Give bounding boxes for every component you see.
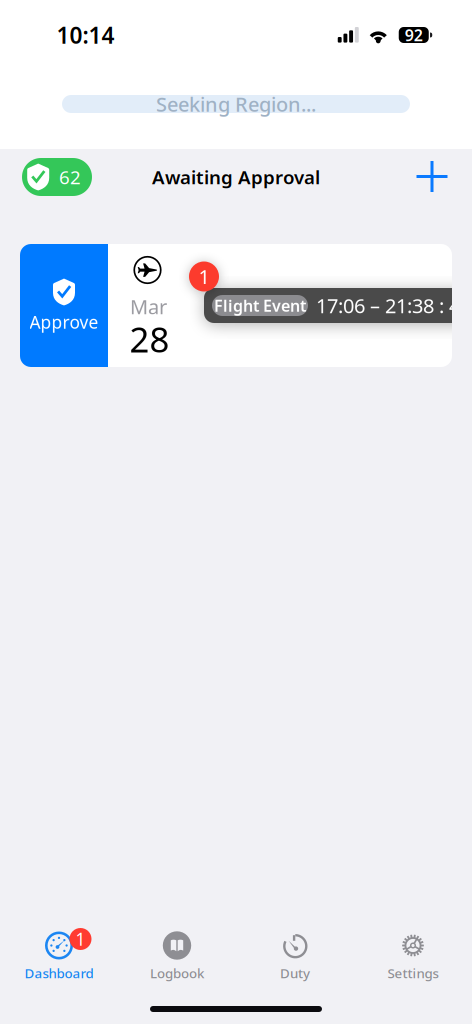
button[interactable]: Logbook <box>118 916 236 986</box>
staticText: Dashboard <box>24 964 93 982</box>
button[interactable]: Approve <box>20 244 108 367</box>
button[interactable]: Add <box>407 152 456 201</box>
staticText: 28 <box>129 316 169 362</box>
staticText: 17:06 – 21:38 : 4.5 <box>316 292 472 319</box>
button[interactable]: Duty <box>236 916 354 986</box>
staticText: Duty <box>280 964 310 982</box>
staticText: 62 <box>59 165 81 189</box>
staticText: Approve <box>29 310 98 333</box>
button[interactable]: Settings <box>354 916 472 986</box>
staticText: Seeking Region... <box>156 91 316 117</box>
staticText: 1 <box>75 927 85 950</box>
staticText: 92 <box>405 24 423 46</box>
staticText: 10:14 <box>56 20 114 50</box>
button[interactable]: 1 <box>0 916 118 986</box>
staticText: Settings <box>387 964 438 982</box>
staticText: Logbook <box>150 964 204 982</box>
staticText: 1 <box>198 263 209 290</box>
button[interactable]: 62 <box>22 158 92 196</box>
staticText: Mar <box>130 293 167 320</box>
staticText: Flight Event <box>214 295 306 316</box>
staticText: Awaiting Approval <box>152 165 320 189</box>
